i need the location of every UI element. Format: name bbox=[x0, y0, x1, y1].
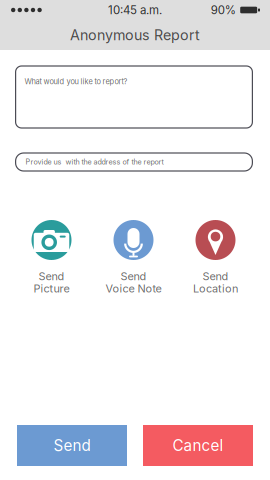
button[interactable]: Anonymous Report bbox=[0, 20, 270, 50]
button[interactable]: Send bbox=[174, 220, 256, 295]
button[interactable]: What would you like to report? bbox=[16, 66, 252, 128]
staticText: Send bbox=[53, 436, 90, 455]
button[interactable]: Cancel bbox=[143, 425, 253, 466]
staticText: Provide us with the address of the repor… bbox=[26, 158, 164, 166]
button[interactable]: Send bbox=[10, 220, 92, 295]
staticText: Picture bbox=[33, 282, 69, 295]
staticText: 10:45 a.m. bbox=[108, 3, 162, 17]
staticText: Send bbox=[38, 270, 64, 283]
staticText: Send bbox=[202, 270, 228, 283]
staticText: 90% bbox=[211, 3, 236, 17]
staticText: Voice Note bbox=[105, 282, 161, 295]
staticText: Anonymous Report bbox=[70, 26, 200, 44]
button[interactable]: Provide us with the address of the repor… bbox=[16, 153, 252, 171]
button[interactable]: Send bbox=[17, 425, 127, 466]
staticText: Location bbox=[193, 282, 238, 295]
staticText: What would you like to report? bbox=[25, 77, 128, 86]
staticText: Send bbox=[120, 270, 146, 283]
staticText: Cancel bbox=[172, 436, 223, 455]
button[interactable]: Send bbox=[92, 220, 174, 295]
